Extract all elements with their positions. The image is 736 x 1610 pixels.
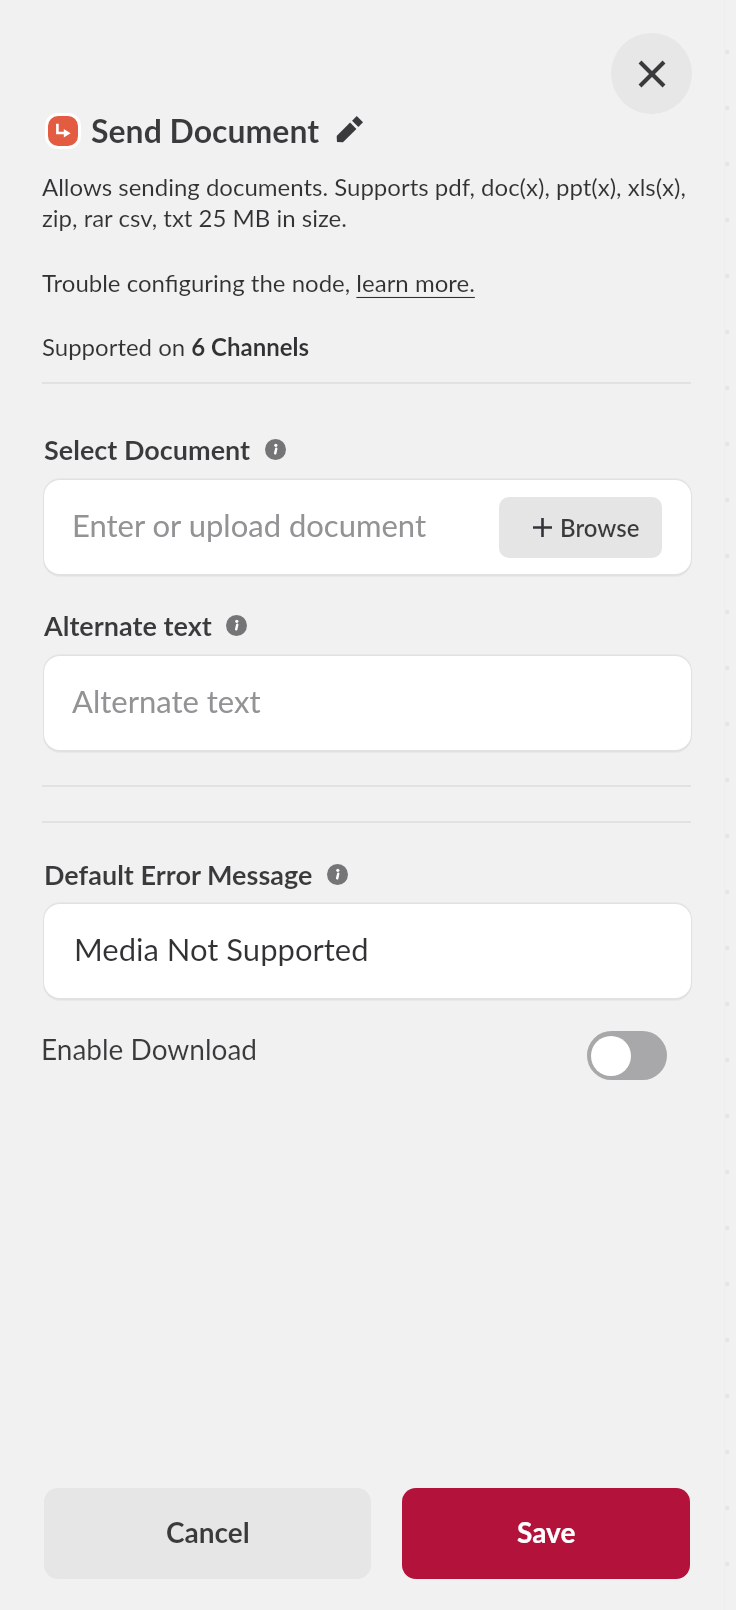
staticText: Trouble configuring the node, learn more… bbox=[42, 268, 475, 297]
staticText: Alternate text bbox=[44, 609, 212, 641]
staticText: Save bbox=[517, 1515, 576, 1549]
button[interactable]: Save bbox=[402, 1488, 690, 1579]
button[interactable]: Enable Download toggle bbox=[587, 1031, 667, 1080]
staticText: Default Error Message bbox=[44, 858, 313, 890]
staticText: Cancel bbox=[166, 1515, 250, 1549]
button[interactable]: Close bbox=[611, 33, 692, 114]
button[interactable]: Cancel bbox=[44, 1488, 371, 1579]
staticText: Enable Download bbox=[41, 1032, 258, 1066]
button[interactable]: Browse bbox=[499, 497, 662, 558]
staticText: Select Document bbox=[44, 433, 251, 465]
staticText: Allows sending documents. Supports pdf, … bbox=[42, 172, 702, 232]
staticText: Supported on 6 Channels bbox=[42, 332, 310, 361]
staticText: Browse bbox=[560, 513, 640, 542]
staticText: Alternate text bbox=[72, 682, 261, 719]
staticText: Media Not Supported bbox=[74, 930, 369, 967]
button[interactable]: Edit bbox=[331, 113, 365, 147]
staticText: Send Document bbox=[91, 111, 320, 149]
staticText: Enter or upload document bbox=[72, 506, 427, 543]
